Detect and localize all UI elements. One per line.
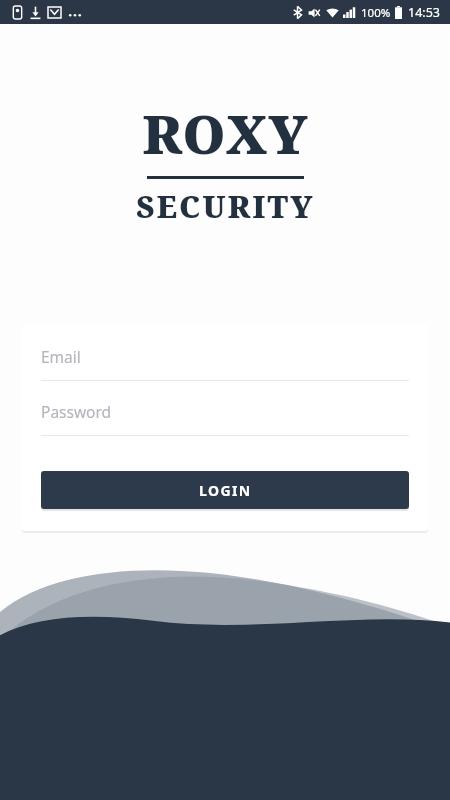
staticText: Password — [41, 401, 112, 422]
staticText: 14:53 — [408, 4, 440, 21]
staticText: SECURITY — [136, 186, 315, 227]
staticText: ROXY — [142, 97, 309, 169]
staticText: 100% — [361, 5, 391, 21]
staticText: Email — [41, 346, 81, 367]
staticText: LOGIN — [199, 481, 252, 500]
button[interactable]: LOGIN — [41, 471, 409, 509]
button[interactable]: Password — [41, 401, 409, 436]
button[interactable]: Email — [41, 346, 409, 381]
